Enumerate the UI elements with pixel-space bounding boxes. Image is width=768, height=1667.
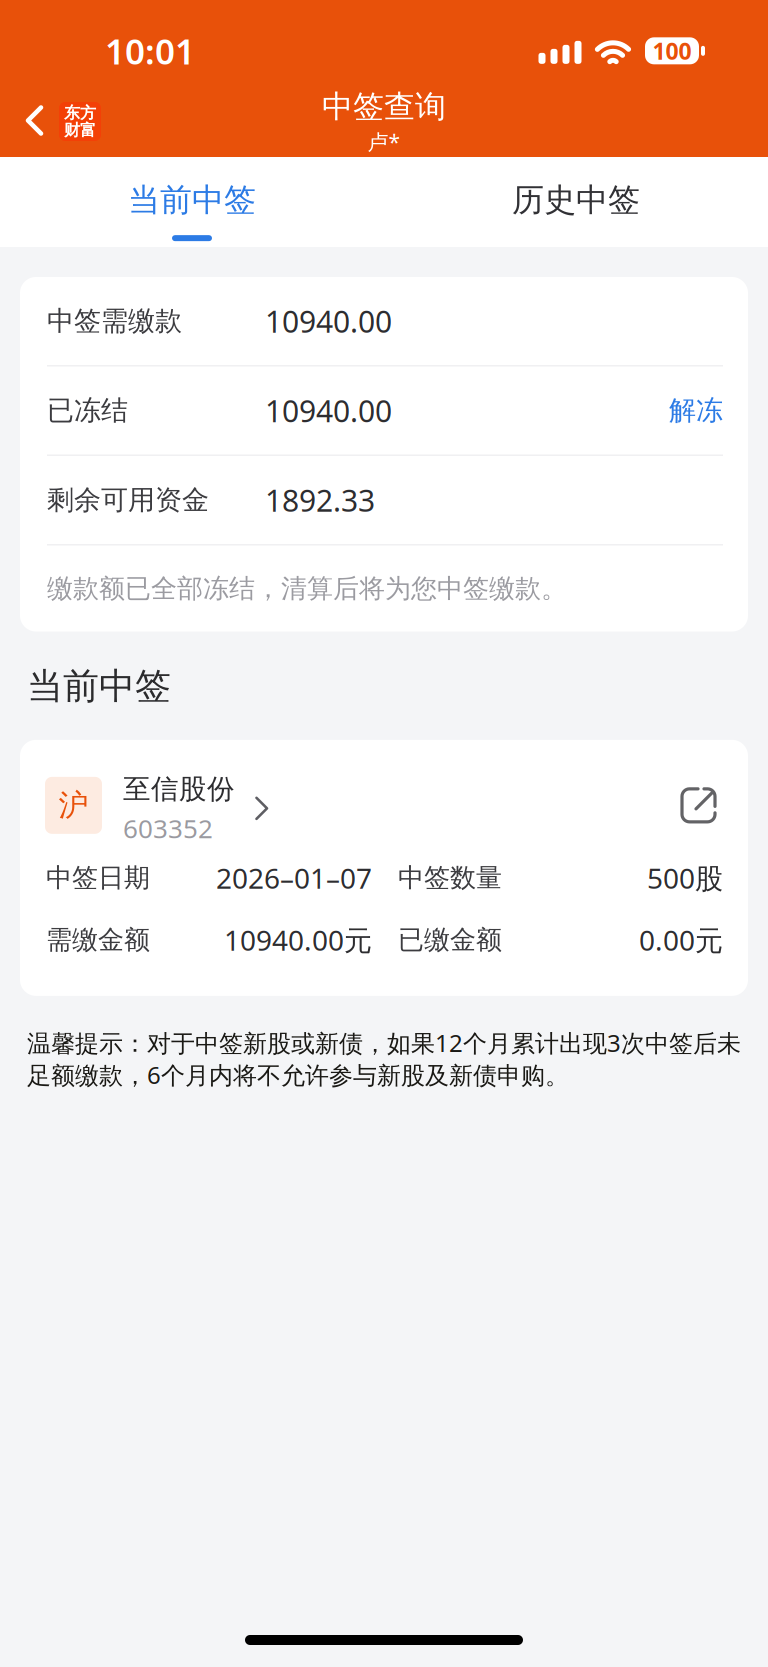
button[interactable]: 在新窗口打开	[674, 781, 723, 830]
staticText: 历史中签	[512, 180, 640, 220]
staticText: 1892.33	[265, 480, 375, 520]
staticText: 温馨提示：对于中签新股或新债，如果12个月累计出现3次中签后未足额缴款，6个月内…	[27, 1027, 741, 1091]
staticText: 10:01	[105, 27, 195, 75]
staticText: 10940.00元	[224, 921, 372, 959]
staticText: 500股	[647, 859, 723, 897]
staticText: 财富	[64, 120, 96, 140]
staticText: 当前中签	[27, 663, 171, 709]
staticText: 中签数量	[398, 861, 502, 894]
staticText: 已缴金额	[398, 923, 502, 956]
button[interactable]: 沪	[45, 777, 268, 834]
staticText: 中签日期	[46, 861, 150, 894]
staticText: 中签需缴款	[47, 304, 182, 338]
staticText: 100	[652, 35, 691, 66]
staticText: 东方	[64, 103, 96, 123]
button[interactable]: 历史中签	[384, 153, 768, 251]
staticText: 10940.00	[265, 301, 392, 341]
staticText: 当前中签	[128, 180, 256, 220]
button[interactable]: 返回 东方财富	[0, 88, 101, 154]
button[interactable]: 解冻	[669, 393, 723, 427]
staticText: 需缴金额	[46, 923, 150, 956]
staticText: 解冻	[669, 393, 723, 427]
button[interactable]: 当前中签	[0, 153, 384, 251]
staticText: 10940.00	[265, 390, 392, 431]
staticText: 中签查询	[322, 87, 446, 126]
staticText: 至信股份	[123, 772, 235, 806]
staticText: 已冻结	[47, 393, 128, 427]
staticText: 缴款额已全部冻结，清算后将为您中签缴款。	[47, 572, 567, 605]
staticText: 剩余可用资金	[47, 483, 209, 517]
staticText: 603352	[123, 810, 213, 846]
staticText: 卢*	[367, 127, 400, 156]
staticText: 2026–01–07	[216, 859, 372, 897]
staticText: 0.00元	[639, 921, 723, 959]
staticText: 沪	[58, 786, 88, 824]
